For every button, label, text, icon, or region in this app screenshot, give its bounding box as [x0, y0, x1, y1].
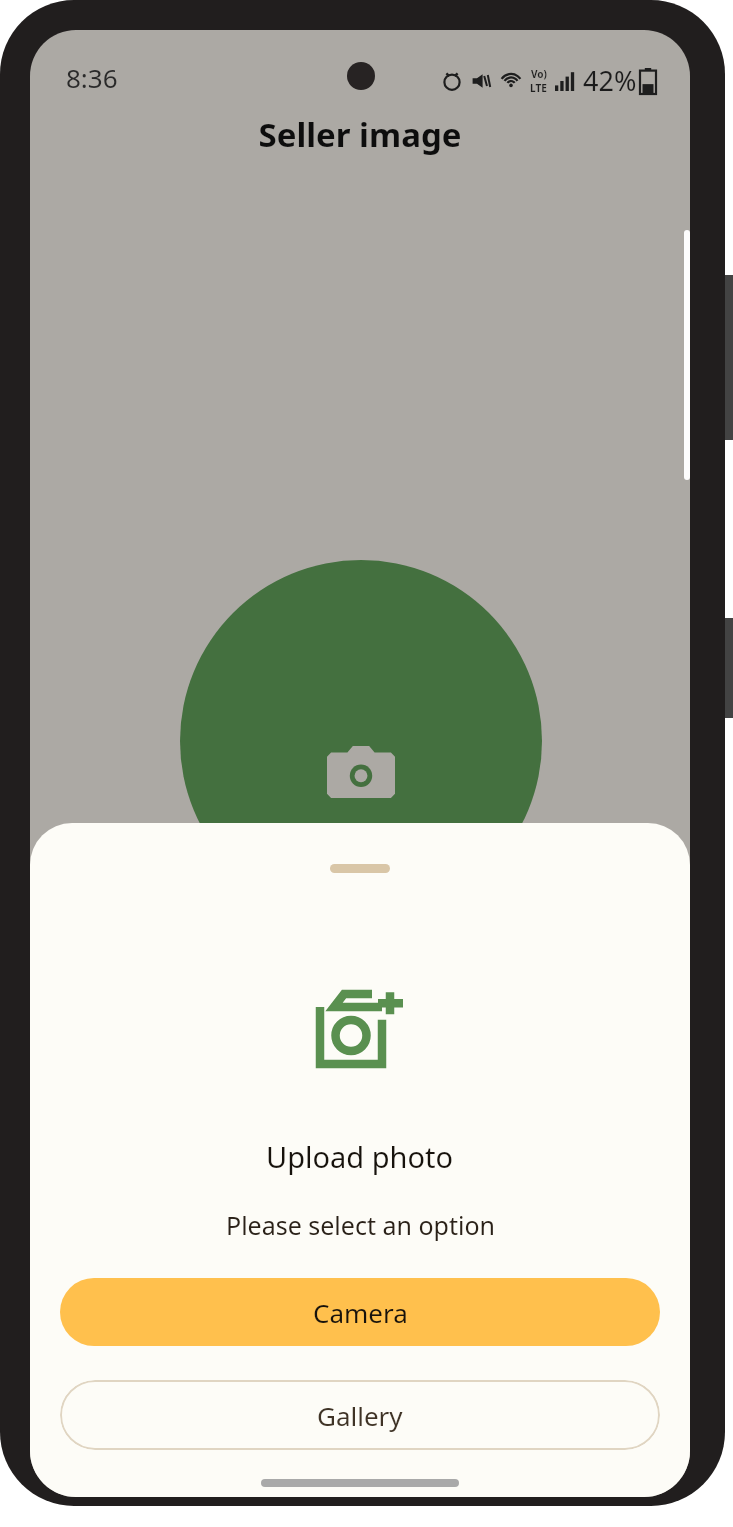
button[interactable]: Camera: [60, 1278, 660, 1346]
staticText: 8:36: [66, 60, 118, 95]
staticText: Please select an option: [226, 1208, 495, 1242]
button[interactable]: Gallery: [60, 1380, 660, 1450]
staticText: Upload photo: [266, 1137, 454, 1176]
staticText: Vo): [531, 67, 547, 81]
staticText: Gallery: [317, 1398, 403, 1433]
staticText: Seller image: [30, 112, 690, 157]
staticText: 42%: [583, 62, 637, 99]
staticText: LTE: [530, 81, 547, 95]
staticText: Camera: [313, 1295, 408, 1330]
